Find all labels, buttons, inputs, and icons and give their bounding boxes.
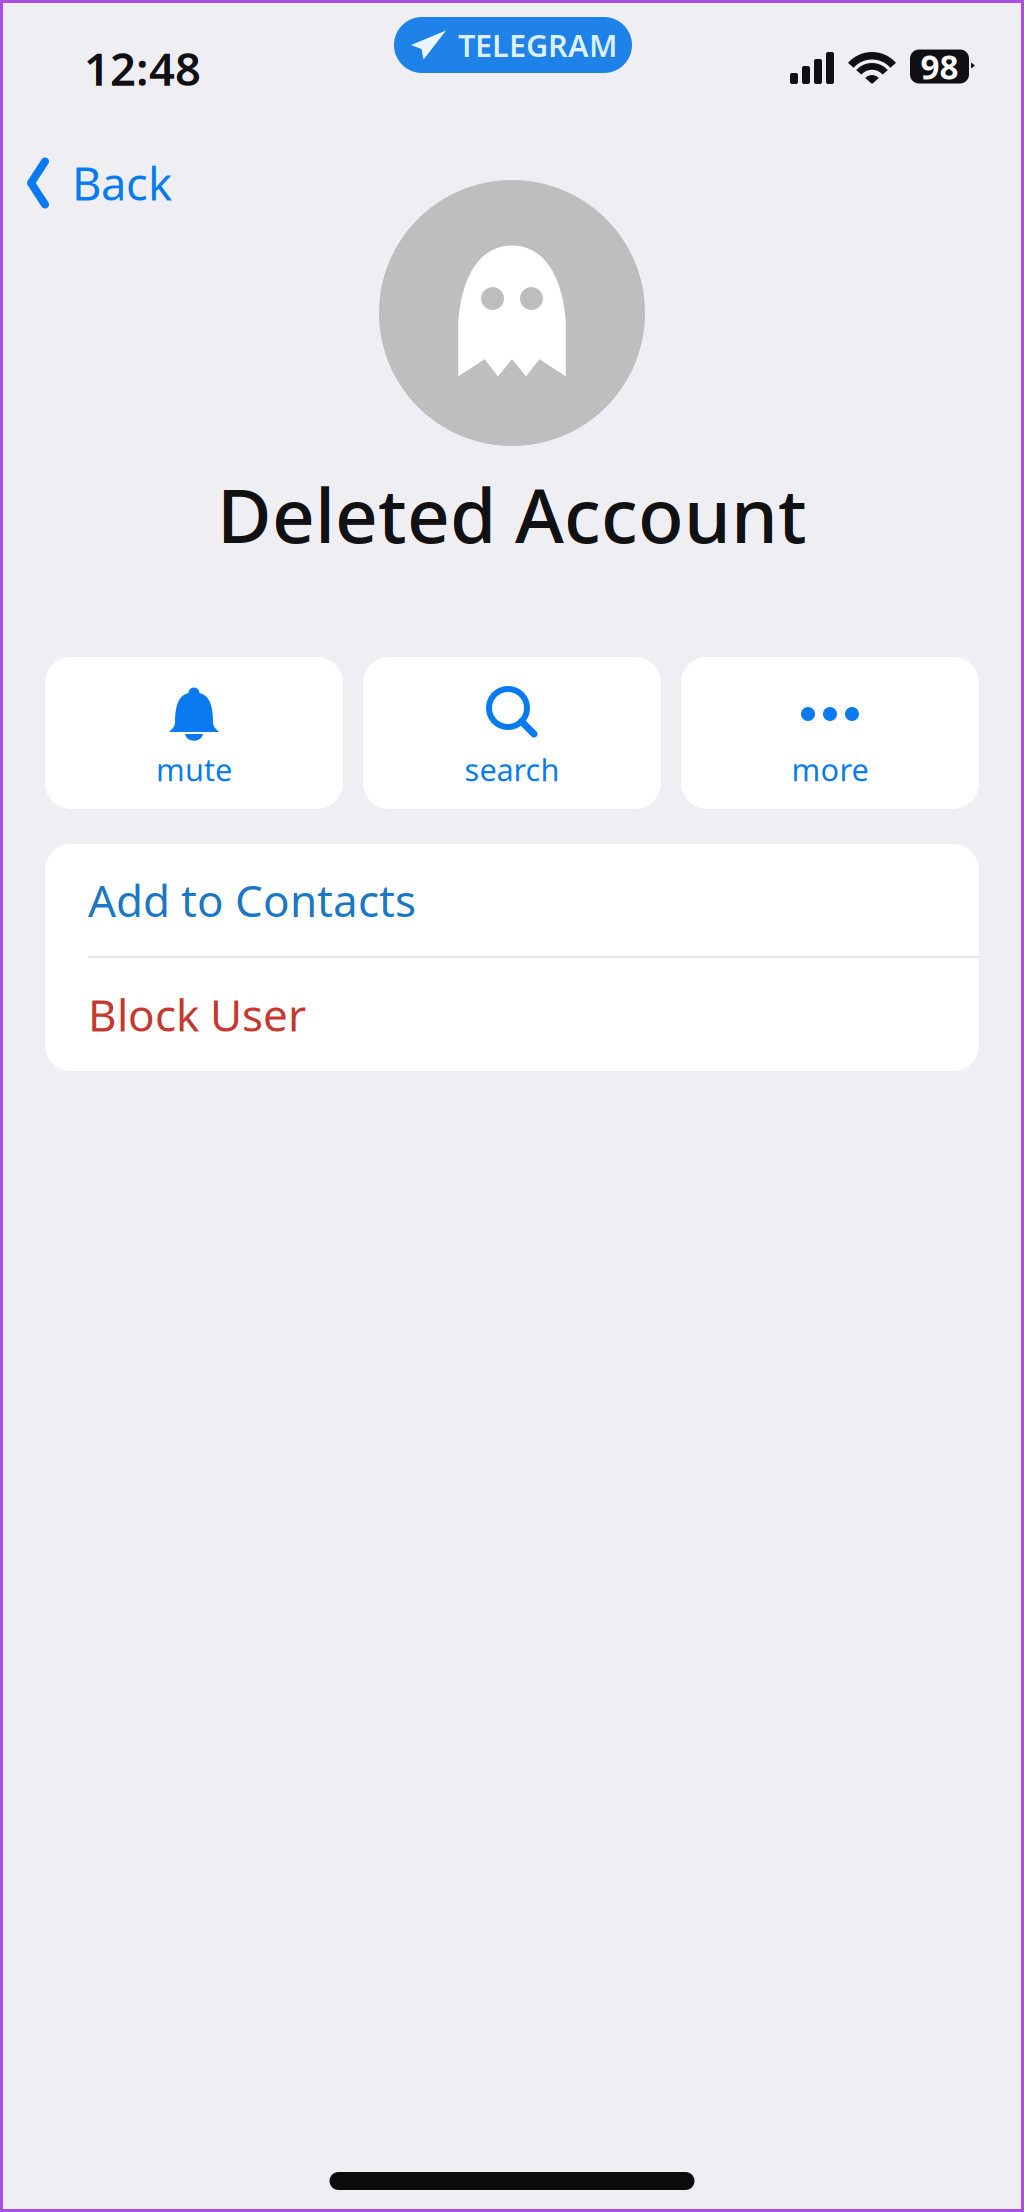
staticText: Back	[72, 153, 172, 213]
button[interactable]: Back	[0, 112, 198, 254]
button[interactable]: Block User	[45, 958, 979, 1071]
button[interactable]: more	[681, 657, 979, 809]
staticText: Add to Contacts	[88, 871, 416, 929]
staticText: Block User	[88, 985, 306, 1044]
staticText: 98	[920, 44, 958, 89]
staticText: mute	[156, 749, 232, 790]
button[interactable]: mute	[45, 657, 343, 809]
staticText: Deleted Account	[217, 464, 807, 564]
button[interactable]: Add to Contacts	[45, 844, 979, 956]
staticText: TELEGRAM	[458, 25, 617, 65]
button[interactable]: search	[363, 657, 661, 809]
staticText: 12:48	[84, 38, 201, 98]
staticText: more	[791, 749, 868, 790]
staticText: search	[464, 749, 559, 790]
